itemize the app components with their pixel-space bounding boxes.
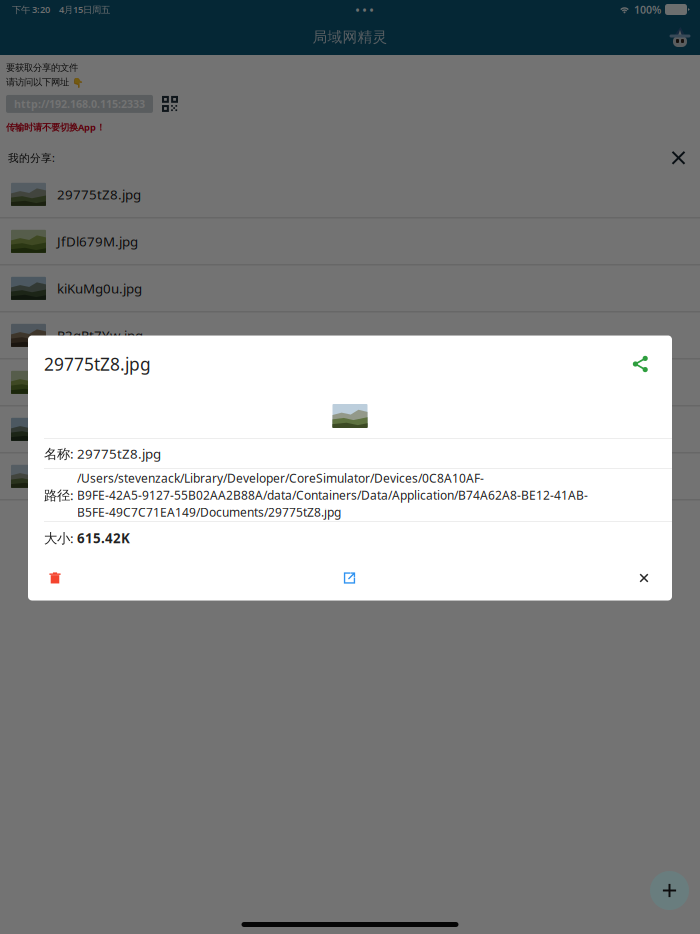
staticText: kiKuMg0u.jpg [57,279,142,297]
button[interactable]: Share [624,348,656,380]
staticText: 传输时请不要切换App！ [6,121,105,133]
staticText: 100% [634,2,661,17]
staticText: P2qRt7Yw.jpg [57,326,143,344]
button[interactable]: kiKuMg0u.jpg [0,265,700,312]
staticText: 请访问以下网址 👇 [6,76,84,88]
staticText: wK5jT9Rp.jpg [57,467,140,485]
button[interactable]: Delete [33,556,77,600]
button[interactable]: 29775tZ8.jpg [0,171,700,218]
staticText: 名称: [44,445,77,462]
staticText: 我的分享: [8,151,55,165]
staticText: • • • [355,2,373,17]
button[interactable]: zQ3bF6Hd.jpg [0,406,700,453]
staticText: 下午 3:20 [12,3,50,16]
staticText: B9FE-42A5-9127-55B02AA2B88A/data/Contain… [77,487,588,503]
button[interactable]: P2qRt7Yw.jpg [0,312,700,359]
staticText: B5FE-49C7C71EA149/Documents/29775tZ8.jpg [77,504,341,520]
staticText: JfDl679M.jpg [57,232,138,250]
staticText: 要获取分享的文件 [6,62,78,73]
staticText: 29775tZ8.jpg [44,352,151,375]
staticText: mN8sL4Vx.jpg [57,373,146,391]
button[interactable]: Show QR code [160,94,180,114]
staticText: 29775tZ8.jpg [57,185,141,203]
button[interactable]: mN8sL4Vx.jpg [0,359,700,406]
button[interactable]: wK5jT9Rp.jpg [0,453,700,500]
staticText: 615.42K [77,529,130,547]
button[interactable]: App info [666,23,694,51]
button[interactable]: JfDl679M.jpg [0,218,700,265]
staticText: 4月15日周五 [59,3,110,16]
button[interactable]: Add file [650,871,689,910]
staticText: 29775tZ8.jpg [77,445,161,462]
staticText: /Users/stevenzack/Library/Developer/Core… [77,470,484,486]
staticText: http://192.168.0.115:2333 [14,97,145,111]
staticText: 路径: [44,486,77,504]
button[interactable]: Close [622,556,666,600]
button[interactable]: Close shares [666,145,691,170]
button[interactable]: Open in new window [327,556,371,600]
staticText: 局域网精灵 [312,28,387,46]
staticText: 大小: [44,529,77,547]
